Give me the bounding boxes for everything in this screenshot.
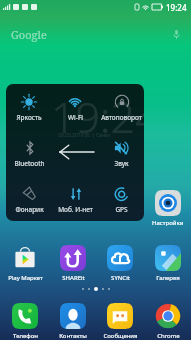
button[interactable]: Voice search — [171, 29, 182, 40]
staticText: SHAREit — [62, 274, 85, 282]
staticText: Звук — [114, 159, 129, 168]
staticText: SYNCit — [111, 274, 130, 282]
staticText: 19:24 — [51, 87, 144, 146]
button[interactable]: Google — [0, 22, 191, 46]
button[interactable]: Телефон — [2, 303, 48, 340]
button[interactable]: Яркость — [6, 84, 52, 130]
staticText: Контакты — [59, 332, 87, 340]
button[interactable]: Автоповорот — [98, 84, 144, 130]
staticText: Галерея — [156, 274, 180, 282]
button[interactable]: Bluetooth — [6, 130, 52, 176]
staticText: Автоповорот — [101, 113, 142, 122]
staticText: Сообщения — [103, 332, 138, 340]
button[interactable]: Фонарик — [6, 176, 52, 221]
button[interactable]: Звук — [98, 130, 144, 176]
staticText: Chrome — [157, 332, 180, 340]
button[interactable]: Chrome — [145, 303, 191, 340]
staticText: Яркость — [16, 113, 42, 122]
button[interactable]: Контакты — [50, 303, 96, 340]
staticText: Моб. И-нет — [58, 205, 93, 214]
staticText: Wi-Fi — [68, 113, 83, 122]
staticText: Google — [11, 27, 47, 42]
button[interactable]: Сообщения — [97, 303, 143, 340]
staticText: GPS — [115, 205, 128, 214]
button[interactable]: Play Маркет — [2, 245, 48, 282]
button[interactable]: Wi-Fi — [52, 84, 98, 130]
button[interactable]: GPS — [98, 176, 144, 221]
staticText: Настройки — [152, 219, 184, 227]
button[interactable]: Галерея — [145, 245, 191, 282]
staticText: 20.05.2018 Вс | Санкт — [58, 132, 110, 139]
button[interactable]: SYNCit — [97, 245, 143, 282]
button[interactable]: Моб. И-нет — [52, 176, 98, 221]
staticText: Фонарик — [15, 205, 44, 214]
staticText: Bluetooth — [14, 159, 45, 168]
staticText: Телефон — [13, 332, 38, 340]
button[interactable] — [52, 130, 98, 176]
staticText: Play Маркет — [8, 274, 43, 282]
button[interactable]: SHAREit — [50, 245, 96, 282]
other: Back — [59, 144, 95, 160]
staticText: 19:24 — [166, 2, 187, 13]
button[interactable]: Настройки — [145, 190, 191, 227]
